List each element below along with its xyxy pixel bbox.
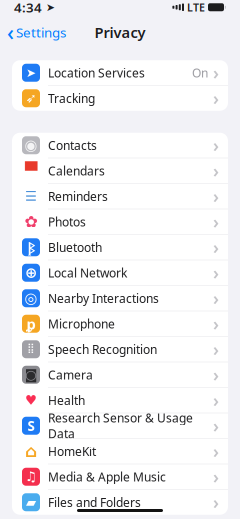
staticText: Photos: [48, 214, 86, 230]
button[interactable]: ➤: [12, 60, 228, 86]
staticText: HomeKit: [48, 443, 96, 459]
staticText: Reminders: [48, 188, 108, 204]
staticText: ›: [213, 159, 219, 182]
staticText: Media & Apple Music: [48, 469, 166, 485]
staticText: ›: [213, 363, 219, 386]
staticText: ›: [213, 389, 219, 412]
staticText: ➶: [25, 91, 36, 106]
staticText: Privacy: [94, 22, 145, 42]
button[interactable]: ◙: [12, 362, 228, 388]
staticText: Camera: [48, 367, 93, 383]
staticText: ›: [213, 210, 219, 233]
staticText: Speech Recognition: [48, 341, 157, 357]
staticText: ☰: [25, 189, 37, 204]
staticText: Settings: [16, 23, 66, 41]
staticText: Location Services: [48, 65, 145, 81]
staticText: Local Network: [48, 265, 127, 281]
staticText: Bluetooth: [48, 239, 102, 255]
staticText: LTE: [187, 0, 205, 14]
button[interactable]: ◎: [12, 286, 228, 311]
staticText: ✿: [24, 213, 37, 231]
staticText: Calendars: [48, 163, 105, 179]
staticText: ›: [213, 338, 219, 361]
staticText: ᛒ: [27, 238, 34, 256]
staticText: ◎: [24, 290, 37, 306]
button[interactable]: ☰: [12, 184, 228, 209]
staticText: ▀: [25, 162, 37, 180]
staticText: On: [192, 65, 208, 81]
staticText: ›: [213, 491, 219, 514]
staticText: ›: [213, 287, 219, 310]
staticText: Microphone: [48, 316, 115, 332]
staticText: ➤: [26, 66, 36, 79]
button[interactable]: ᵱ: [12, 311, 228, 337]
staticText: ›: [213, 465, 219, 488]
staticText: S: [27, 417, 34, 435]
button[interactable]: ⌂: [12, 439, 228, 464]
button[interactable]: ♫: [12, 464, 228, 490]
staticText: ›: [213, 61, 219, 84]
button[interactable]: ◉: [12, 133, 228, 158]
staticText: ›: [213, 440, 219, 463]
staticText: ›: [213, 261, 219, 284]
staticText: ›: [213, 236, 219, 259]
button[interactable]: ✿: [12, 209, 228, 235]
button[interactable]: ➶: [12, 86, 228, 111]
button[interactable]: ᛒ: [12, 235, 228, 260]
button[interactable]: ▰: [12, 490, 228, 515]
staticText: ‹: [7, 18, 14, 46]
staticText: ⊕: [25, 264, 37, 281]
button[interactable]: ⦙⦙: [12, 337, 228, 362]
button[interactable]: ♥: [12, 388, 228, 413]
staticText: ➤: [42, 1, 55, 13]
staticText: ›: [213, 185, 219, 208]
staticText: Contacts: [48, 137, 97, 153]
staticText: Research Sensor & Usage Data: [48, 410, 193, 442]
button[interactable]: ▀: [12, 158, 228, 184]
staticText: ♥: [25, 393, 37, 408]
button[interactable]: ⊕: [12, 260, 228, 286]
staticText: ›: [213, 414, 219, 437]
staticText: Files and Folders: [48, 494, 141, 510]
staticText: ♫: [25, 469, 37, 484]
staticText: ›: [213, 134, 219, 157]
staticText: ›: [213, 87, 219, 110]
button[interactable]: ‹: [0, 14, 66, 50]
staticText: ◉: [24, 137, 37, 153]
staticText: ⦙⦙: [28, 343, 34, 355]
staticText: Nearby Interactions: [48, 290, 159, 306]
staticText: ᵱ: [26, 314, 35, 333]
staticText: ›: [213, 312, 219, 335]
staticText: ▰: [26, 495, 36, 510]
staticText: ◙: [24, 367, 37, 382]
staticText: 4:34: [14, 0, 42, 16]
staticText: Tracking: [48, 90, 95, 106]
staticText: Health: [48, 392, 85, 408]
staticText: ⌂: [25, 441, 37, 461]
button[interactable]: S: [12, 413, 228, 439]
